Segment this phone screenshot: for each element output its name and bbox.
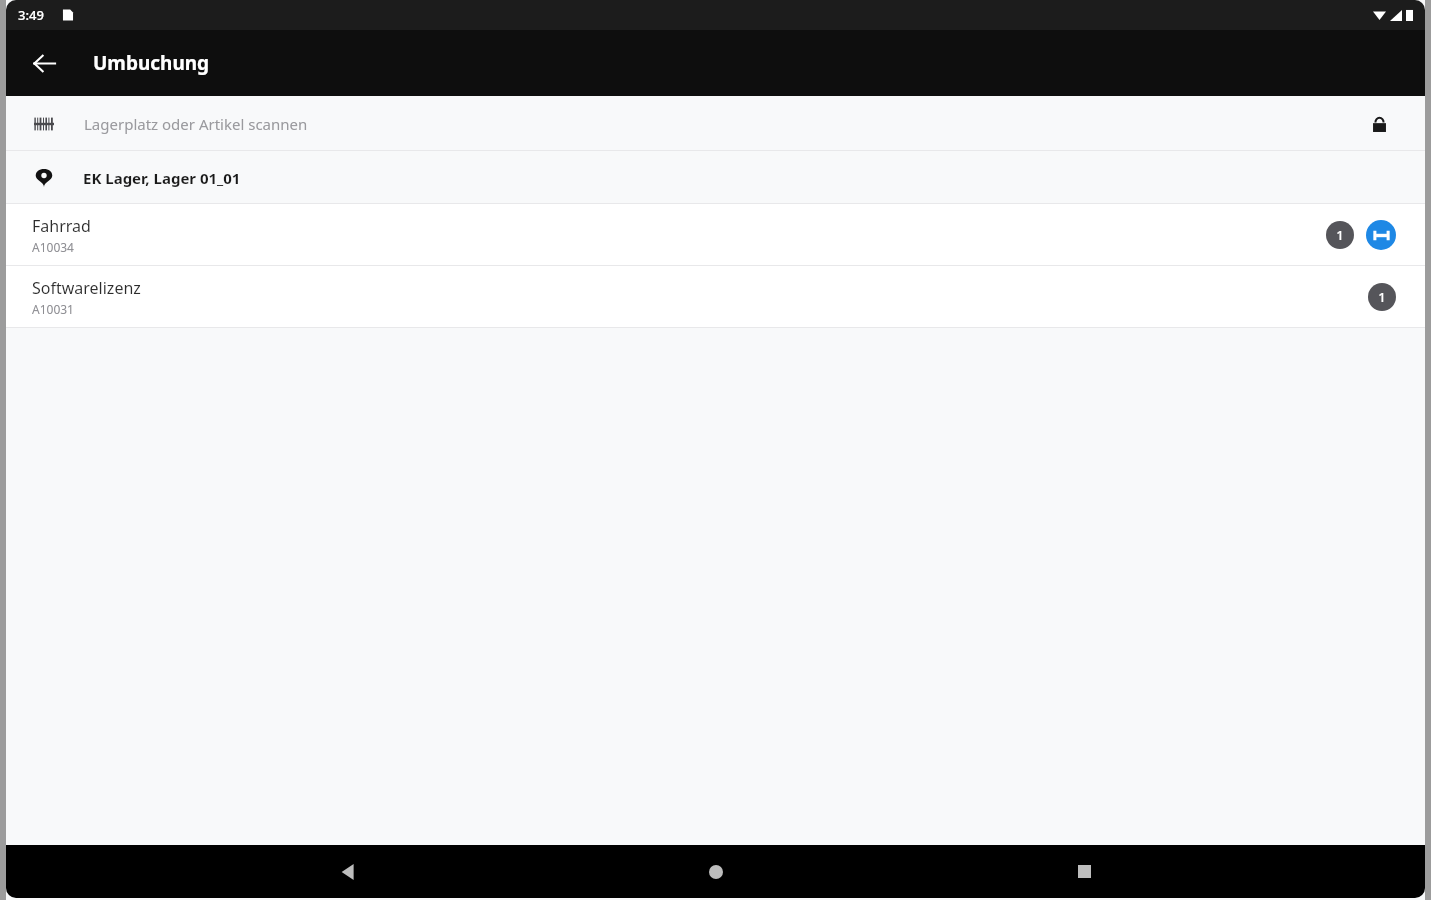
button[interactable]: Softwarelizenz: [6, 266, 1425, 328]
button[interactable]: 1: [1326, 221, 1354, 249]
button[interactable]: 1: [1368, 283, 1396, 311]
staticText: 1: [1336, 226, 1344, 244]
staticText: Umbuchung: [93, 50, 210, 76]
staticText: Fahrrad: [32, 215, 91, 237]
staticText: Lagerplatz oder Artikel scannen: [84, 114, 308, 134]
staticText: A10031: [32, 301, 74, 317]
button[interactable]: Gewicht: [1366, 220, 1396, 250]
button[interactable]: Lock: [1361, 106, 1397, 142]
button[interactable]: Recent apps: [1057, 845, 1111, 898]
button[interactable]: Home: [689, 845, 743, 898]
button[interactable]: EK Lager, Lager 01_01: [6, 151, 1425, 204]
staticText: 3:49: [18, 6, 44, 24]
button[interactable]: Lagerplatz oder Artikel scannen: [6, 96, 1425, 151]
button[interactable]: Back: [20, 39, 68, 87]
staticText: A10034: [32, 239, 74, 255]
staticText: Softwarelizenz: [32, 277, 141, 299]
button[interactable]: Back: [321, 845, 375, 898]
staticText: EK Lager, Lager 01_01: [83, 168, 241, 188]
button[interactable]: Fahrrad: [6, 204, 1425, 266]
staticText: 1: [1378, 288, 1386, 306]
